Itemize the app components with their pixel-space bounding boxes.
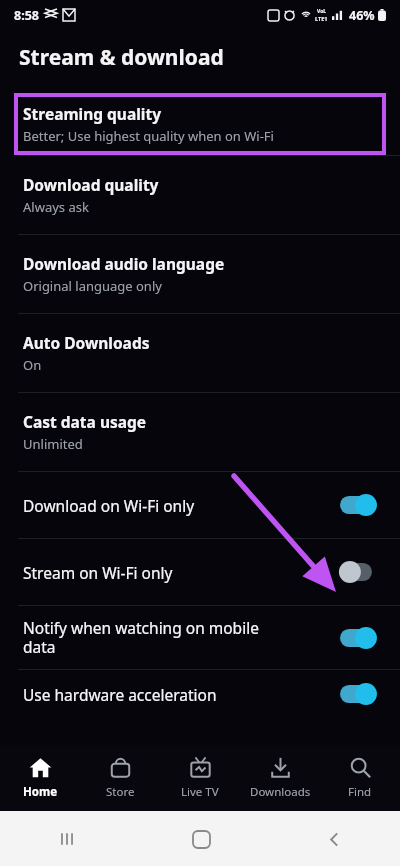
staticText: 46% — [349, 7, 375, 24]
button[interactable]: Downloads — [240, 745, 320, 811]
staticText: Stream on Wi-Fi only — [23, 562, 173, 583]
button[interactable]: Download on Wi-Fi only — [0, 472, 400, 538]
button[interactable]: Toggle on — [340, 683, 380, 705]
staticText: Notify when watching on mobile data — [23, 617, 259, 658]
staticText: Download on Wi-Fi only — [23, 495, 195, 516]
staticText: On — [23, 356, 42, 374]
staticText: Original language only — [23, 277, 162, 295]
staticText: Streaming quality — [23, 103, 162, 124]
button[interactable]: Streaming quality — [14, 93, 386, 155]
button[interactable]: Cast data usage — [0, 393, 400, 471]
button[interactable]: Toggle on — [340, 627, 380, 649]
staticText: Home — [23, 784, 58, 800]
button[interactable]: Home — [0, 745, 80, 811]
button[interactable]: Home — [186, 824, 216, 854]
button[interactable]: Notify when watching on mobile data — [0, 606, 400, 669]
staticText: Use hardware acceleration — [23, 684, 217, 705]
button[interactable]: Toggle on — [340, 494, 380, 516]
button[interactable]: Back — [319, 824, 349, 854]
staticText: Unlimited — [23, 435, 83, 453]
button[interactable]: Use hardware acceleration — [0, 670, 400, 718]
staticText: Better; Use highest quality when on Wi-F… — [23, 127, 274, 145]
button[interactable]: Live TV — [160, 745, 240, 811]
button[interactable]: Auto Downloads — [0, 314, 400, 392]
staticText: Stream & download — [19, 43, 224, 72]
staticText: Store — [106, 784, 135, 800]
button[interactable]: Find — [320, 745, 400, 811]
staticText: LTE1 — [315, 15, 328, 22]
button[interactable]: Toggle off — [340, 561, 380, 583]
staticText: Download audio language — [23, 253, 225, 274]
staticText: Cast data usage — [23, 411, 147, 432]
staticText: 8:58 — [14, 7, 39, 24]
staticText: Download quality — [23, 174, 159, 195]
staticText: VoL — [317, 8, 327, 15]
button[interactable]: Stream on Wi-Fi only — [0, 539, 400, 605]
staticText: Downloads — [250, 784, 311, 800]
button[interactable]: Store — [80, 745, 160, 811]
button[interactable]: Recents — [52, 824, 82, 854]
button[interactable]: Download quality — [0, 156, 400, 234]
button[interactable]: Download audio language — [0, 235, 400, 313]
staticText: Auto Downloads — [23, 332, 150, 353]
staticText: Always ask — [23, 198, 89, 216]
staticText: Find — [348, 784, 372, 800]
staticText: Live TV — [181, 784, 219, 800]
